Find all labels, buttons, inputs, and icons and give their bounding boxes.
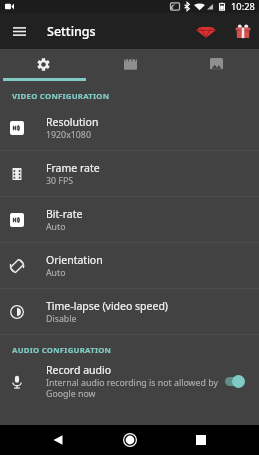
button[interactable]: Frame rate [0,151,259,196]
button[interactable]: Open navigation menu [0,13,38,49]
button[interactable]: Resolution [0,105,259,150]
button[interactable]: Back [43,425,73,455]
button[interactable]: Home [115,425,145,455]
button[interactable]: Settings tab [0,49,87,81]
staticText: 1920x1080 [46,129,91,141]
staticText: Orientation [46,253,103,267]
staticText: AUDIO CONFIGURATION [12,345,112,356]
button[interactable]: Gift [226,13,259,49]
staticText: 30 FPS [46,175,74,187]
staticText: Auto [46,221,66,233]
button[interactable]: Toggle record audio [225,359,259,404]
staticText: Time-lapse (video speed) [46,299,168,313]
staticText: 10:28 [231,0,255,13]
button[interactable]: Recent apps [186,425,216,455]
button[interactable]: Videos tab [87,49,173,81]
button[interactable]: Record audio [0,359,259,404]
staticText: Frame rate [46,161,100,175]
button[interactable]: Time-lapse (video speed) [0,289,259,334]
button[interactable]: Premium [186,13,226,49]
staticText: Auto [46,267,66,279]
staticText: Record audio [46,363,112,377]
staticText: VIDEO CONFIGURATION [12,91,110,102]
button[interactable]: Images tab [173,49,259,81]
staticText: Resolution [46,115,99,129]
staticText: Settings [47,23,96,40]
staticText: Bit-rate [46,207,83,221]
staticText: Disable [46,313,77,325]
staticText: Internal audio recording is not allowed … [46,377,221,400]
button[interactable]: Bit-rate [0,197,259,242]
button[interactable]: Orientation [0,243,259,288]
